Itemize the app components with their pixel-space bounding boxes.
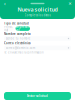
staticText: Completa los datos	[24, 13, 50, 17]
staticText: Te enviaremos la confirmación	[4, 51, 44, 54]
button[interactable]: Enviar solicitud	[4, 92, 71, 100]
staticText: ‹	[4, 0, 6, 7]
staticText: Empresarial	[16, 25, 30, 32]
button[interactable]: Back	[2, 1, 8, 6]
staticText: Tipo de solicitud	[4, 22, 29, 25]
staticText: Escribe tu nombre	[6, 37, 31, 40]
staticText: correo@dominio.com	[6, 46, 35, 50]
button[interactable]: Personal	[4, 26, 13, 31]
staticText: Correo electrónico	[4, 41, 31, 45]
button[interactable]: Close	[67, 1, 73, 6]
staticText: ×	[68, 0, 71, 7]
staticText: Enviar solicitud	[27, 94, 48, 98]
staticText: Nueva solicitud	[17, 6, 57, 13]
button[interactable]: Empresarial	[15, 26, 30, 31]
staticText: Personal	[4, 25, 13, 32]
staticText: Nombre completo	[4, 32, 31, 36]
